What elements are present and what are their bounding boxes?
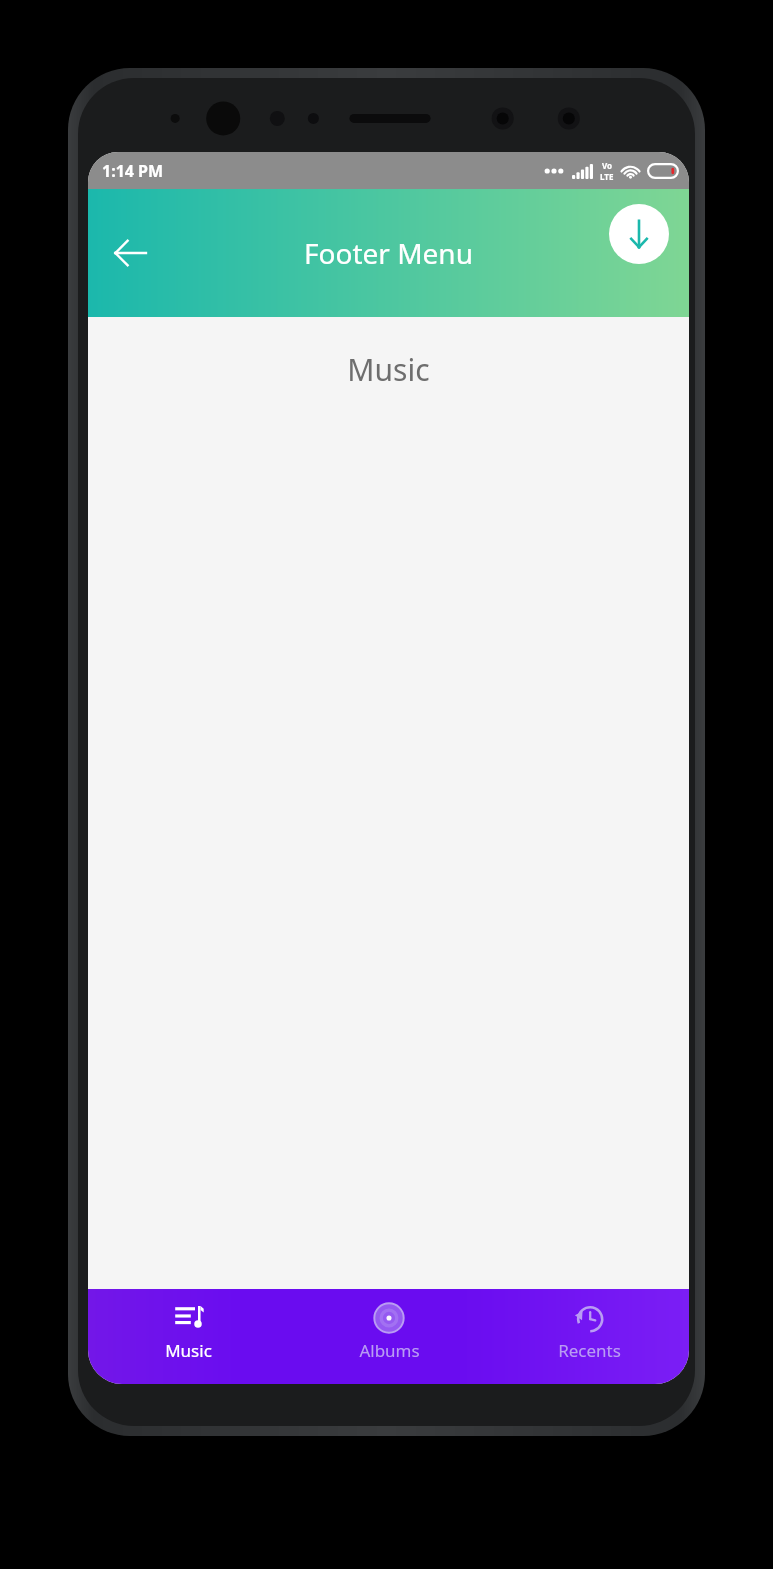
- button[interactable]: Music: [88, 1289, 289, 1384]
- staticText: Albums: [359, 1339, 420, 1362]
- staticText: LTE: [600, 171, 614, 182]
- staticText: Music: [165, 1339, 212, 1362]
- button[interactable]: Back: [102, 225, 158, 281]
- button[interactable]: Download: [609, 204, 669, 264]
- staticText: 1:14 PM: [102, 160, 164, 182]
- staticText: Recents: [558, 1339, 621, 1362]
- staticText: Footer Menu: [304, 234, 473, 272]
- button[interactable]: Albums: [289, 1289, 489, 1384]
- button[interactable]: Recents: [489, 1289, 689, 1384]
- staticText: Music: [88, 349, 689, 390]
- staticText: Vo: [602, 160, 613, 171]
